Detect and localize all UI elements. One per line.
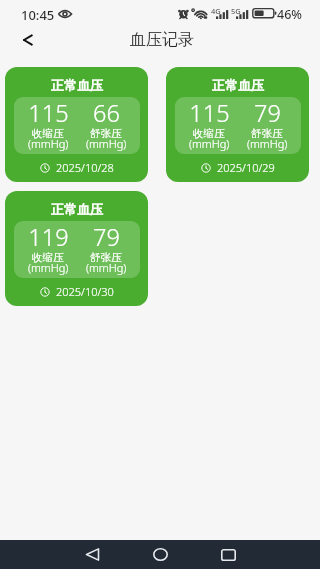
staticText: (mmHg)	[247, 136, 288, 151]
staticText: 收缩压	[32, 251, 64, 264]
staticText: (mmHg)	[28, 260, 69, 275]
staticText: 79	[93, 221, 120, 253]
staticText: 正常血压	[51, 77, 103, 93]
staticText: 正常血压	[51, 201, 103, 217]
staticText: 正常血压	[212, 77, 264, 93]
staticText: (mmHg)	[189, 136, 230, 151]
staticText: 5G	[231, 6, 241, 16]
staticText: 115	[28, 97, 69, 129]
button[interactable]: Back	[68, 540, 116, 569]
staticText: 10:45	[21, 6, 55, 24]
staticText: (mmHg)	[86, 260, 127, 275]
staticText: 2025/10/29	[217, 160, 275, 175]
staticText: 66	[93, 97, 120, 129]
staticText: 收缩压	[32, 127, 64, 140]
button[interactable]: 正常血压	[5, 67, 148, 182]
button[interactable]: Back	[10, 22, 46, 57]
staticText: 舒张压	[90, 127, 122, 140]
staticText: 4G	[211, 6, 221, 16]
staticText: 79	[254, 97, 281, 129]
staticText: (mmHg)	[28, 136, 69, 151]
staticText: 舒张压	[251, 127, 283, 140]
button[interactable]: 正常血压	[5, 191, 148, 306]
staticText: 2025/10/28	[56, 160, 114, 175]
button[interactable]: Home	[136, 540, 184, 569]
staticText: 血压记录	[130, 30, 194, 50]
staticText: 119	[28, 221, 69, 253]
staticText: 2025/10/30	[56, 284, 114, 299]
button[interactable]: 正常血压	[166, 67, 309, 182]
staticText: 舒张压	[90, 251, 122, 264]
staticText: 46%	[277, 6, 302, 23]
staticText: 收缩压	[193, 127, 225, 140]
staticText: (mmHg)	[86, 136, 127, 151]
button[interactable]: Recents	[204, 540, 252, 569]
staticText: 115	[189, 97, 230, 129]
